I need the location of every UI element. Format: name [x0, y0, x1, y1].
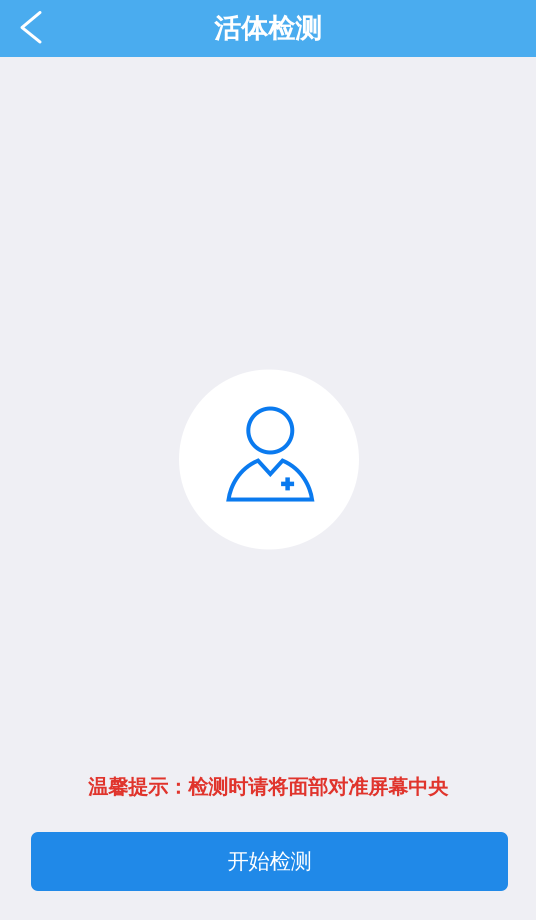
- button[interactable]: 开始检测: [31, 832, 508, 891]
- staticText: 开始检测: [227, 848, 311, 875]
- staticText: 活体检测: [214, 12, 322, 45]
- button[interactable]: Back: [0, 0, 56, 57]
- staticText: 温馨提示：检测时请将面部对准屏幕中央: [88, 775, 448, 799]
